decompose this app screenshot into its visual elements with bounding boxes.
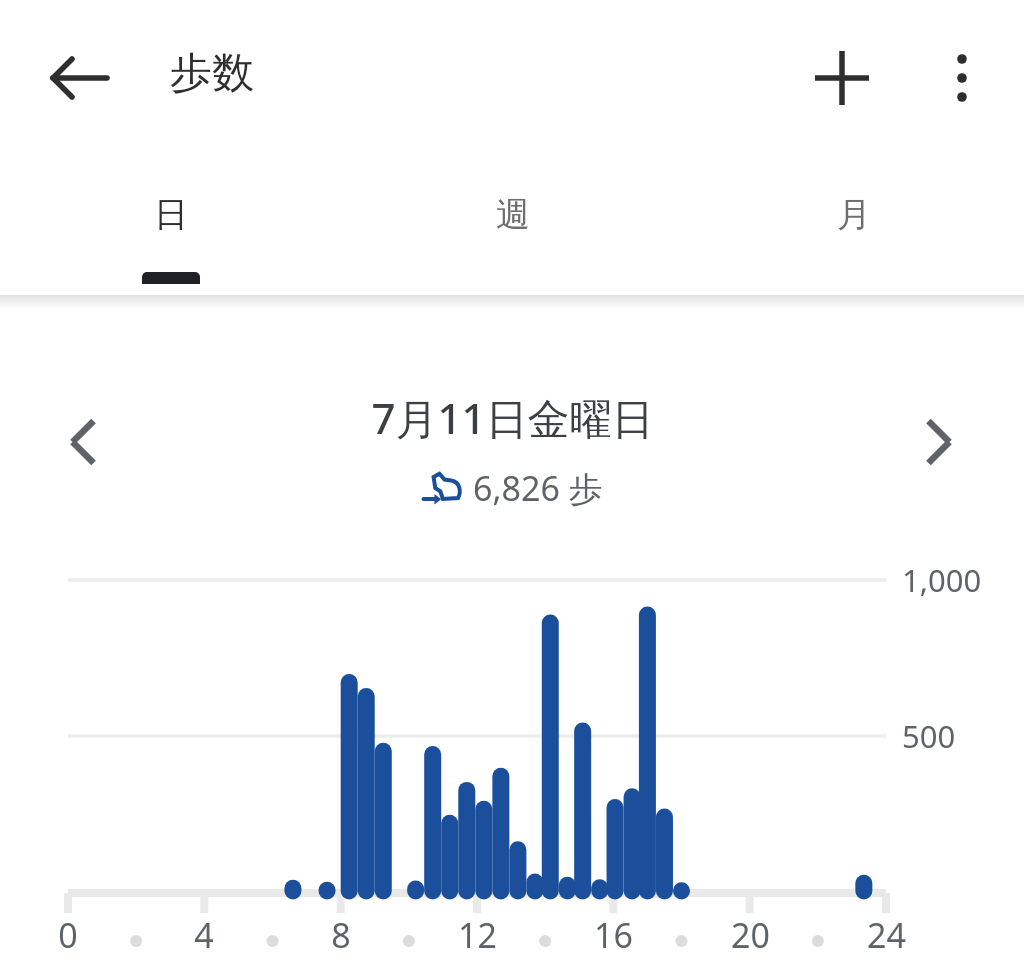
button[interactable]: 日 [0,160,342,295]
staticText: 20 [731,912,770,958]
staticText: 0 [58,912,78,958]
staticText: 12 [458,912,497,958]
button[interactable]: 週 [342,160,683,295]
staticText: 歩数 [170,47,254,100]
button[interactable]: Previous day [44,407,114,477]
button[interactable]: 月 [683,160,1024,295]
staticText: 24 [867,912,906,958]
staticText: 日 [154,193,188,236]
button[interactable]: Back [44,42,116,114]
button[interactable]: More options [926,42,998,114]
staticText: 月 [837,193,871,236]
staticText: 16 [594,912,633,958]
staticText: 500 [902,715,956,757]
button[interactable]: Next day [908,407,978,477]
staticText: 1,000 [902,559,982,601]
button[interactable]: Add [806,42,878,114]
staticText: 8 [331,912,351,958]
staticText: 6,826 歩 [473,465,603,511]
staticText: 4 [194,912,214,958]
staticText: 週 [496,193,530,236]
staticText: 7月11日金曜日 [371,389,654,446]
